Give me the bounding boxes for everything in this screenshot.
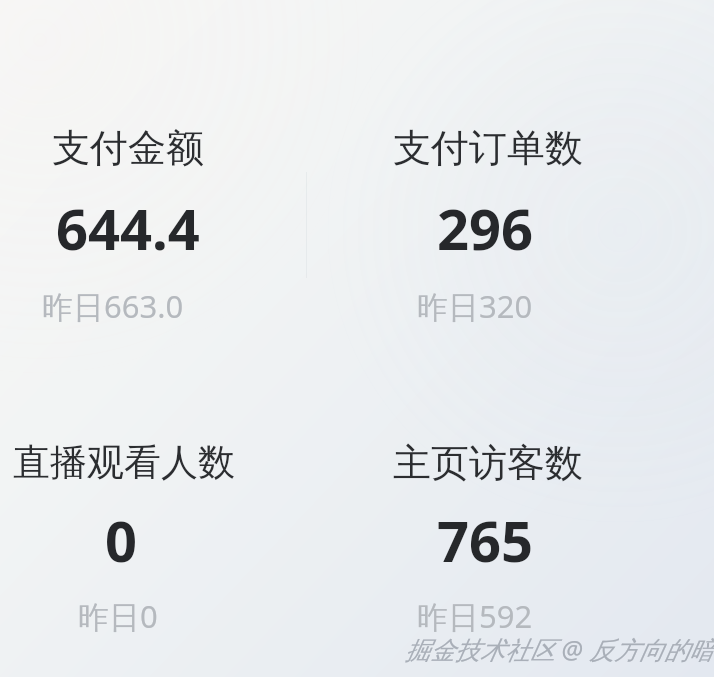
staticText: 直播观看人数 — [13, 439, 235, 486]
staticText: 昨日663.0 — [42, 285, 184, 327]
staticText: 昨日592 — [417, 595, 533, 637]
button[interactable]: 直播观看人数 — [0, 360, 357, 677]
staticText: 昨日320 — [417, 285, 533, 327]
button[interactable]: 支付订单数 — [357, 0, 714, 360]
staticText: 主页访客数 — [393, 439, 583, 487]
staticText: 296 — [437, 190, 534, 266]
staticText: 0 — [105, 502, 138, 578]
staticText: 支付订单数 — [393, 124, 583, 172]
staticText: 昨日0 — [78, 595, 158, 637]
staticText: 644.4 — [56, 190, 200, 266]
button[interactable]: 支付金额 — [0, 0, 357, 360]
button[interactable]: 主页访客数 — [357, 360, 714, 677]
staticText: 掘金技术社区 @ 反方向的暗号 — [405, 632, 714, 666]
staticText: 支付金额 — [52, 124, 204, 172]
staticText: 765 — [437, 502, 534, 578]
